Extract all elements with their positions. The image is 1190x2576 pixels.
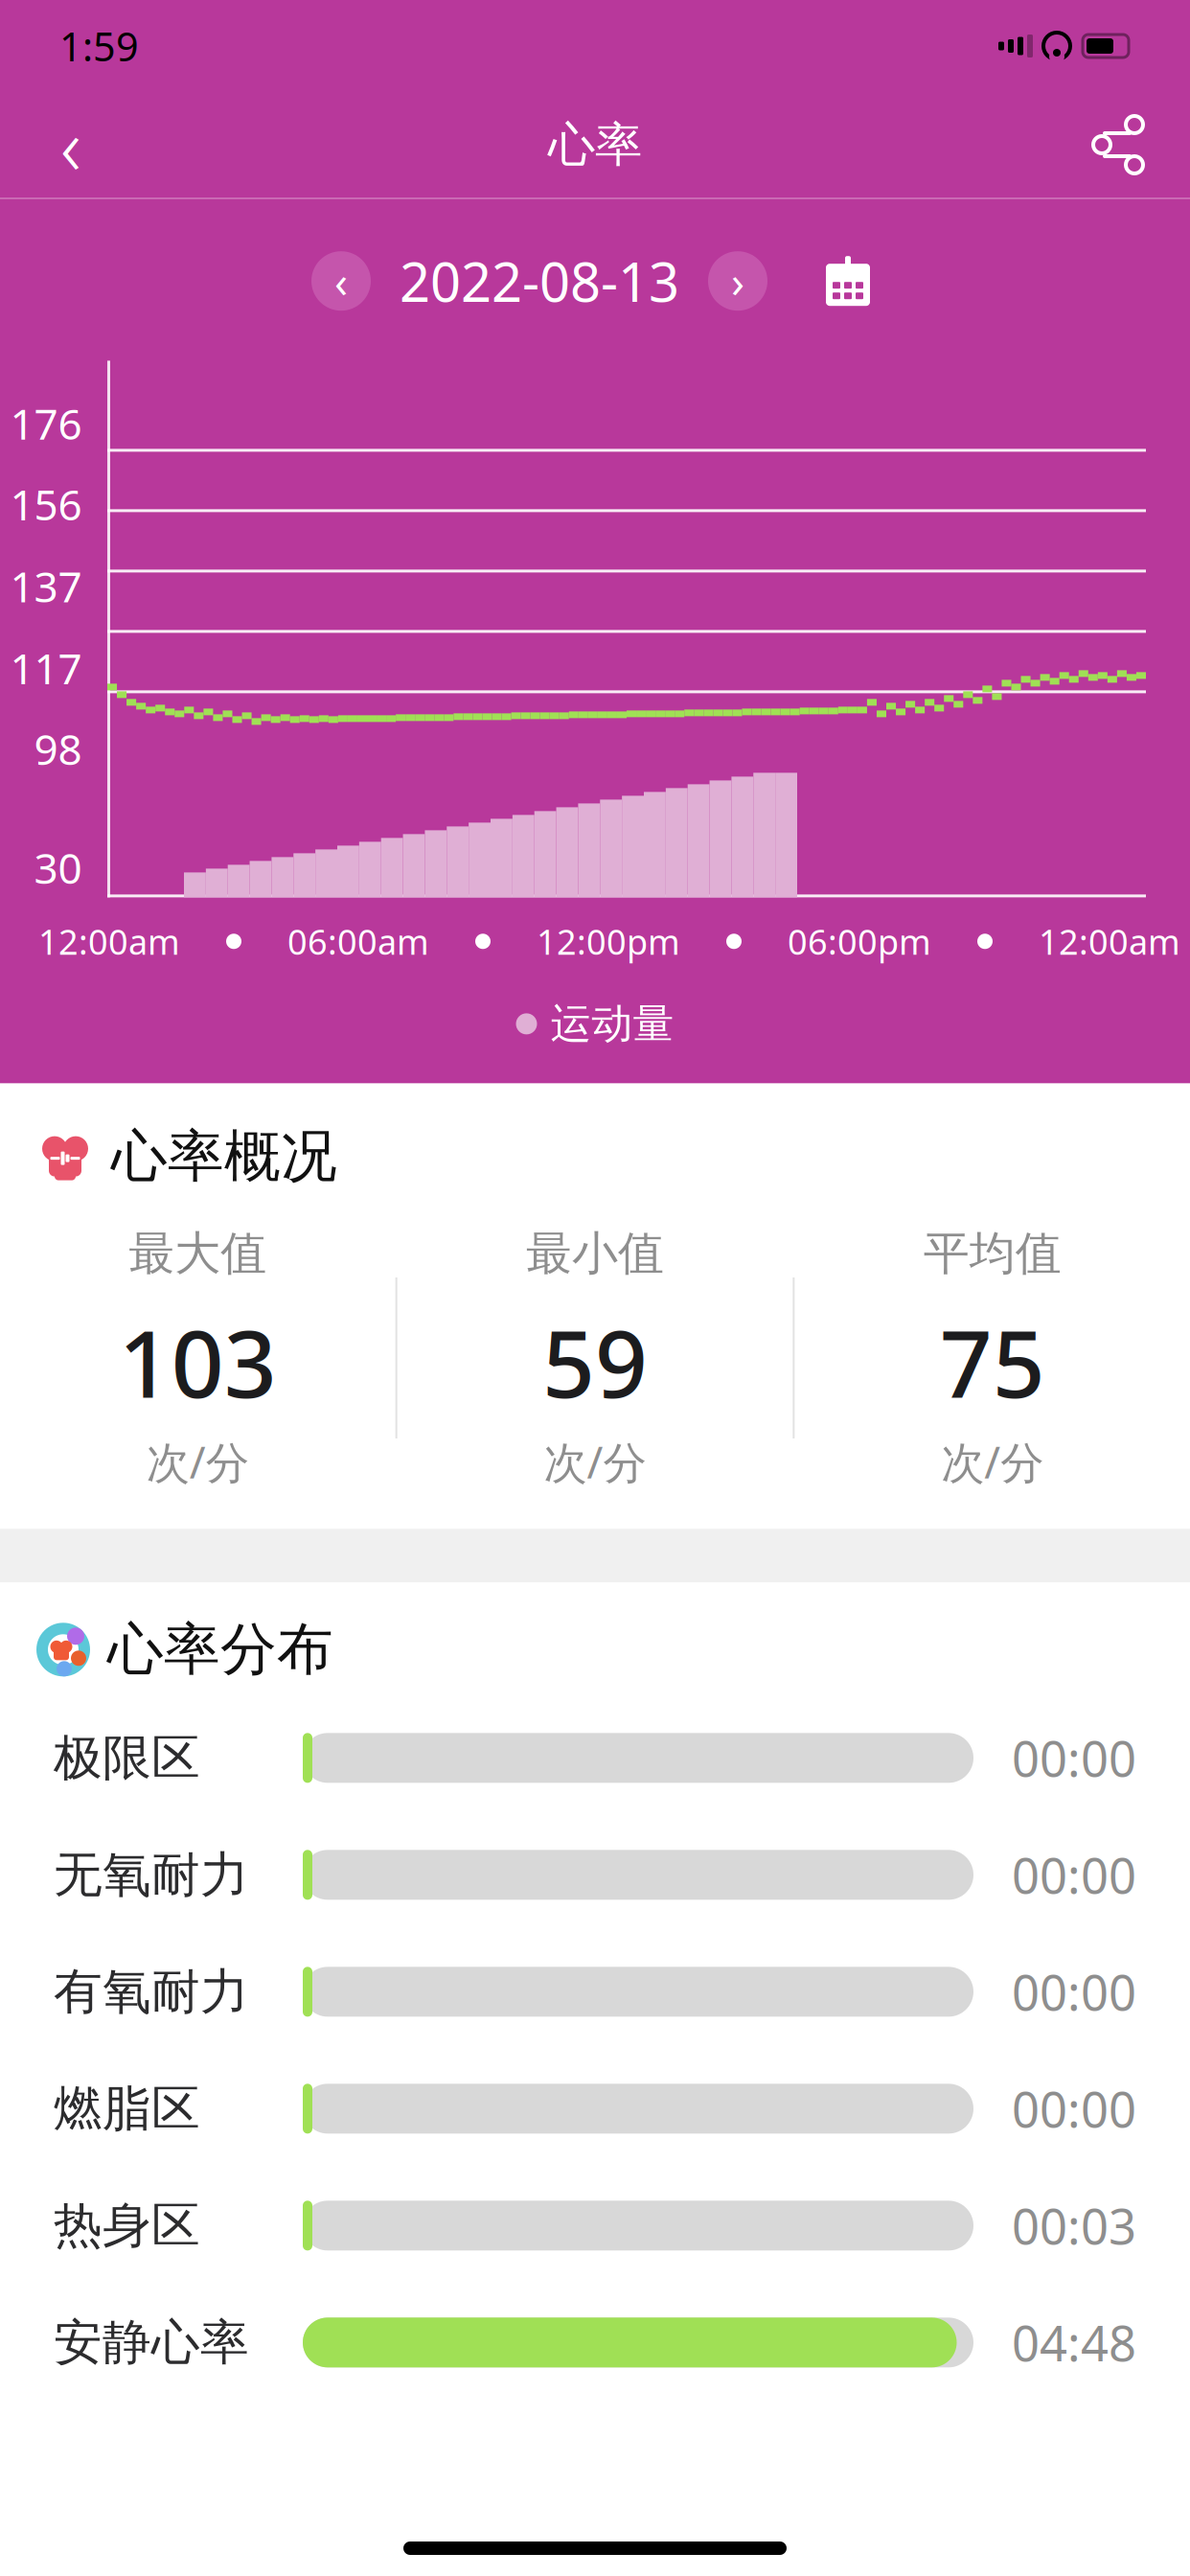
staticText: 30: [34, 839, 82, 895]
staticText: 有氧耐力: [54, 1962, 249, 2022]
staticText: 最大值: [129, 1225, 267, 1282]
staticText: 安静心率: [54, 2313, 249, 2372]
staticText: 00:00: [1012, 1843, 1136, 1907]
staticText: 平均值: [923, 1225, 1061, 1282]
staticText: 1:59: [59, 20, 139, 72]
staticText: 00:00: [1012, 2076, 1136, 2141]
staticText: 无氧耐力: [54, 1845, 249, 1905]
staticText: 59: [542, 1301, 648, 1423]
staticText: 04:48: [1012, 2310, 1136, 2375]
staticText: 次/分: [941, 1433, 1044, 1490]
staticText: ‹: [60, 92, 81, 197]
staticText: 心率分布: [107, 1615, 333, 1684]
staticText: 燃脂区: [54, 2079, 200, 2138]
staticText: 心率概况: [111, 1122, 337, 1191]
staticText: ‹: [334, 252, 348, 310]
staticText: 00:00: [1012, 1960, 1136, 2024]
staticText: 2022-08-13: [400, 245, 679, 317]
staticText: 心率: [548, 116, 642, 174]
staticText: 98: [34, 721, 82, 777]
staticText: 75: [940, 1301, 1045, 1423]
staticText: 12:00pm: [537, 918, 680, 964]
staticText: 00:00: [1012, 1726, 1136, 1790]
button[interactable]: Share: [1073, 99, 1165, 191]
staticText: 极限区: [54, 1728, 200, 1788]
staticText: 00:03: [1012, 2193, 1136, 2258]
button[interactable]: Next day: [708, 251, 767, 311]
button[interactable]: Previous day: [311, 251, 371, 311]
staticText: 06:00am: [287, 918, 429, 964]
staticText: 12:00am: [38, 918, 180, 964]
staticText: 最小值: [526, 1225, 664, 1282]
staticText: 06:00pm: [788, 918, 931, 964]
staticText: 热身区: [54, 2196, 200, 2255]
staticText: 176: [10, 395, 82, 451]
staticText: 次/分: [544, 1433, 646, 1490]
staticText: ›: [731, 252, 744, 310]
staticText: 12:00am: [1039, 918, 1180, 964]
button[interactable]: Pick date: [817, 250, 879, 312]
staticText: 137: [10, 558, 82, 614]
staticText: 117: [10, 640, 82, 696]
staticText: 156: [10, 476, 82, 532]
staticText: 103: [119, 1301, 277, 1423]
staticText: 运动量: [550, 999, 674, 1049]
button[interactable]: Back: [25, 99, 117, 191]
staticText: 次/分: [146, 1433, 249, 1490]
